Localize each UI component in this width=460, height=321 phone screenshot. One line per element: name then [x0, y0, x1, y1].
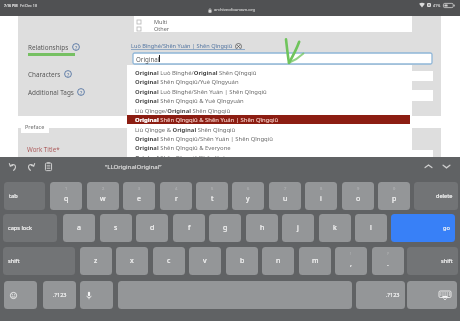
button[interactable]: Scroll up [424, 162, 433, 171]
staticText: s [114, 223, 118, 233]
button[interactable]: Liù Qīngge/Original Shěn Qīngqiū [127, 106, 410, 115]
staticText: n [276, 256, 281, 266]
staticText: l [370, 223, 372, 233]
button[interactable]: Original Shěn Qīngqiū & Shěn Yuán | Shěn… [127, 115, 410, 124]
button[interactable]: Hide keyboard [407, 281, 457, 309]
button[interactable]: r [160, 182, 192, 210]
staticText: g [223, 223, 228, 233]
button[interactable]: Original Shěn Qīngqiū/Shěn Yuán | Shěn Q… [127, 134, 410, 143]
button[interactable]: shift [407, 247, 458, 275]
staticText: 2 [102, 186, 105, 191]
button[interactable]: m [299, 247, 331, 275]
staticText: .?123 [53, 291, 67, 299]
staticText: tab [9, 192, 18, 200]
staticText: a [77, 223, 81, 233]
button[interactable]: v [189, 247, 221, 275]
staticText: k [333, 223, 337, 233]
button[interactable]: Characters [28, 69, 72, 79]
staticText: Original Shěn Qīngqiū & Everyone [135, 144, 231, 152]
staticText: y [246, 194, 250, 204]
button[interactable]: i [305, 182, 337, 210]
button[interactable]: x [116, 247, 148, 275]
staticText: 7 [284, 186, 287, 191]
button[interactable]: Multi [137, 18, 168, 25]
button[interactable]: o [342, 182, 374, 210]
staticText: t [211, 194, 214, 204]
button[interactable]: Other [137, 25, 170, 32]
staticText: Characters [28, 70, 61, 79]
staticText: Original Shěn Qīngqiū & Yuè Qīngyuán [135, 97, 244, 105]
button[interactable]: caps lock [3, 214, 57, 242]
button[interactable]: Remove tag [235, 43, 242, 50]
button[interactable]: t [196, 182, 228, 210]
button[interactable]: Original Shěn Qīngqiū & Everyone [127, 143, 410, 152]
staticText: 8 [320, 186, 323, 191]
staticText: . [387, 259, 389, 269]
button[interactable]: Relationships [28, 42, 80, 52]
button[interactable]: Redo [26, 162, 35, 171]
button[interactable]: z [80, 247, 112, 275]
button[interactable]: Paste [44, 162, 53, 171]
staticText: 5 [211, 186, 214, 191]
button[interactable]: w [87, 182, 119, 210]
staticText: 41% [433, 3, 441, 8]
staticText: ! [350, 251, 352, 256]
button[interactable]: .?123 [43, 281, 76, 309]
button[interactable]: Undo [9, 162, 18, 171]
button[interactable]: tab [4, 182, 45, 210]
button[interactable]: h [246, 214, 278, 242]
button[interactable]: Emoji [4, 281, 37, 309]
button[interactable]: s [100, 214, 132, 242]
button[interactable]: , [335, 247, 367, 275]
staticText: Relationships [28, 43, 69, 52]
staticText: ? [387, 251, 389, 256]
staticText: w [100, 194, 106, 204]
button[interactable]: Scroll down [442, 162, 451, 171]
button[interactable]: . [372, 247, 404, 275]
button[interactable]: Original [133, 53, 432, 64]
button[interactable]: .?123 [356, 281, 405, 309]
button[interactable]: f [173, 214, 205, 242]
button[interactable]: q [50, 182, 82, 210]
button[interactable]: delete [414, 182, 458, 210]
button[interactable]: p [378, 182, 410, 210]
button[interactable]: Original Shěn Qīngqiū/Yuè Qīngyuán [127, 77, 410, 86]
staticText: 1 [65, 186, 68, 191]
button[interactable]: Preface [21, 120, 49, 133]
button[interactable]: Additional Tags [28, 87, 85, 97]
button[interactable]: Dictate [80, 281, 113, 309]
staticText: Work Title* [27, 145, 60, 153]
staticText: Original Luò Bīnghé/Shěn Yuán | Shěn Qīn… [135, 88, 267, 96]
button[interactable]: Original Shěn Qīngqiū & Yuè Qīngyuán [127, 96, 410, 105]
button[interactable]: n [262, 247, 294, 275]
button[interactable]: Original Luò Bīnghé/Shěn Yuán | Shěn Qīn… [127, 87, 410, 96]
button[interactable]: j [282, 214, 314, 242]
button[interactable]: u [269, 182, 301, 210]
button[interactable]: Liù Qīngge & Original Shěn Qīngqiū [127, 125, 410, 134]
button[interactable]: go [391, 214, 455, 242]
staticText: 7:16 PM [4, 3, 18, 8]
button[interactable]: c [153, 247, 185, 275]
staticText: b [240, 256, 245, 266]
staticText: caps lock [8, 224, 32, 232]
staticText: 0 [393, 186, 396, 191]
button[interactable]: d [136, 214, 168, 242]
staticText: h [260, 223, 265, 233]
staticText: z [94, 256, 98, 266]
button[interactable]: y [232, 182, 264, 210]
staticText: ? [75, 44, 78, 51]
button[interactable]: shift [3, 247, 75, 275]
button[interactable]: b [226, 247, 258, 275]
button[interactable]: Original Shěn Qīngqiū/Shěn Yuán [127, 153, 410, 162]
staticText: Original Shěn Qīngqiū/Shěn Yuán [135, 154, 230, 162]
button[interactable]: l [355, 214, 387, 242]
button[interactable]: a [63, 214, 95, 242]
button[interactable]: g [209, 214, 241, 242]
staticText: Fri Dec 18 [20, 3, 38, 8]
button[interactable]: e [123, 182, 155, 210]
button[interactable]: Original Luò Bīnghé/Original Shěn Qīngqi… [127, 68, 410, 77]
button[interactable]: k [319, 214, 351, 242]
staticText: Liù Qīngge/Original Shěn Qīngqiū [135, 107, 231, 115]
staticText: f [188, 223, 191, 233]
